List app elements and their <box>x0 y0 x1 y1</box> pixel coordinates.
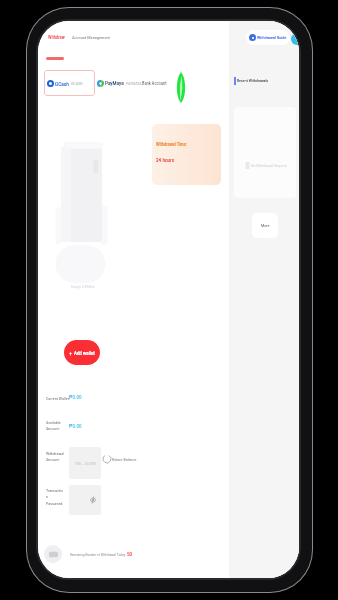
button[interactable]: Bank Account <box>142 70 167 96</box>
button[interactable]: Show password <box>69 485 101 515</box>
button[interactable]: Withdrawal Guide <box>246 30 290 45</box>
button[interactable]: + <box>64 340 100 365</box>
staticText: Account Management <box>72 35 110 40</box>
staticText: PayMaya <box>105 80 124 86</box>
button[interactable]: Return Balance <box>103 455 137 463</box>
staticText: GCASH <box>71 81 83 86</box>
other: GrabPay <box>176 72 186 103</box>
staticText: Available Amount: <box>46 420 65 431</box>
staticText: Add wallet <box>74 350 95 356</box>
staticText: Return Balance <box>112 457 137 462</box>
button[interactable]: Help <box>291 33 299 45</box>
staticText: Withdrawal Time: <box>156 142 187 147</box>
button[interactable]: Withdraw <box>48 35 65 40</box>
staticText: Empty E-Wallet <box>71 284 95 289</box>
button[interactable]: 100 ~ 50,000 <box>69 447 101 479</box>
staticText: More <box>261 223 270 228</box>
button[interactable]: GCash <box>44 70 95 96</box>
button[interactable]: Account Management <box>72 35 110 40</box>
button[interactable]: Wallet <box>44 545 62 563</box>
button[interactable]: More <box>252 213 278 238</box>
staticText: Remaining Number of Withdrawal Today: <box>70 553 126 557</box>
staticText: No Withdrawal Request <box>251 163 287 168</box>
staticText: Withdrawal Guide <box>257 35 287 40</box>
staticText: ₱0.00 <box>69 423 82 429</box>
staticText: Withdraw <box>48 35 65 40</box>
staticText: Bank Account <box>142 81 167 86</box>
staticText: 100 ~ 50,000 <box>75 461 96 466</box>
staticText: PAYMAYA <box>126 81 142 86</box>
button[interactable]: PayMaya <box>97 70 142 96</box>
staticText: ₱0.00 <box>69 394 82 400</box>
staticText: 50 <box>127 551 132 557</box>
staticText: + <box>69 349 73 356</box>
staticText: Recent Withdrawals <box>237 78 269 83</box>
staticText: GCash <box>55 81 69 87</box>
staticText: Withdrawal Amount: <box>46 451 65 462</box>
staticText: 24 hours <box>156 157 175 163</box>
staticText: Transaction Password: <box>46 488 65 506</box>
staticText: Current Wallet: <box>46 396 70 401</box>
